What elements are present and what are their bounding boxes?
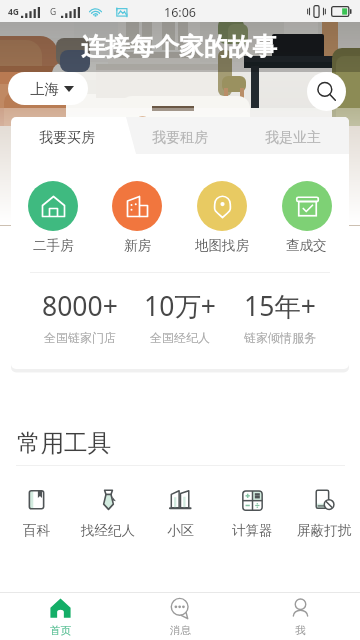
button[interactable]: 我要买房 [11,119,123,156]
button[interactable]: Search [307,72,346,111]
staticText: 全国链家门店 [44,330,116,345]
staticText: 上海 [30,80,59,98]
button[interactable]: 首页 [0,596,120,637]
staticText: 4G [8,6,20,18]
button[interactable]: 屏蔽打扰 [288,487,360,539]
staticText: 新房 [124,237,151,254]
button[interactable]: 小区 [144,487,216,539]
staticText: 8000+ [42,288,118,324]
staticText: 我要租房 [152,129,208,147]
button[interactable]: 我是业主 [236,119,349,156]
staticText: 计算器 [232,522,273,539]
staticText: 全国经纪人 [150,330,210,345]
staticText: 屏蔽打扰 [297,522,351,539]
staticText: 连接每个家的故事 [81,31,277,62]
button[interactable]: 二手房 [11,181,95,254]
staticText: 我 [295,624,306,637]
staticText: 地图找房 [195,237,249,254]
button[interactable]: 地图找房 [179,181,264,254]
staticText: G [50,6,57,18]
button[interactable]: 计算器 [216,487,288,539]
staticText: 小区 [167,522,194,539]
staticText: 16:06 [0,4,360,21]
staticText: 查成交 [286,237,327,254]
button[interactable]: 百科 [0,487,72,539]
button[interactable]: 我要租房 [123,119,236,156]
staticText: 15年+ [244,288,316,324]
staticText: 首页 [50,624,71,637]
button[interactable]: 新房 [95,181,179,254]
staticText: 我要买房 [39,129,95,147]
staticText: 常用工具 [17,428,111,458]
staticText: 百科 [23,522,50,539]
button[interactable]: 找经纪人 [72,487,144,539]
staticText: 消息 [170,624,191,637]
staticText: 链家倾情服务 [244,330,316,345]
button[interactable]: 消息 [120,596,240,637]
button[interactable]: 查成交 [264,181,349,254]
button[interactable]: 上海 [8,72,88,105]
staticText: 二手房 [33,237,74,254]
button[interactable]: 我 [240,596,360,637]
staticText: 我是业主 [265,129,321,147]
staticText: 10万+ [144,288,216,324]
staticText: 找经纪人 [81,522,135,539]
